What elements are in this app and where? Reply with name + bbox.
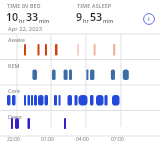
- staticText: Core: [8, 87, 21, 94]
- staticText: Awake: [8, 36, 25, 43]
- button[interactable]: Info: [140, 10, 157, 27]
- staticText: min: [103, 17, 114, 24]
- staticText: 04:00: [76, 136, 89, 143]
- staticText: 01:00: [41, 136, 54, 143]
- staticText: min: [39, 17, 50, 24]
- staticText: 9: [76, 10, 83, 25]
- staticText: 10: [6, 10, 19, 25]
- staticText: 22:00: [7, 136, 20, 143]
- staticText: 07:00: [111, 136, 124, 143]
- staticText: hr: [19, 17, 25, 24]
- staticText: REM: [8, 62, 20, 69]
- staticText: i: [148, 15, 150, 23]
- staticText: TIME ASLEEP: [77, 2, 112, 9]
- staticText: hr: [83, 17, 89, 24]
- staticText: Deep: [8, 113, 22, 120]
- staticText: 53: [90, 10, 103, 25]
- staticText: 33: [26, 10, 39, 25]
- staticText: TIME IN BED: [7, 2, 41, 9]
- staticText: Apr 22, 2023: [8, 25, 43, 33]
